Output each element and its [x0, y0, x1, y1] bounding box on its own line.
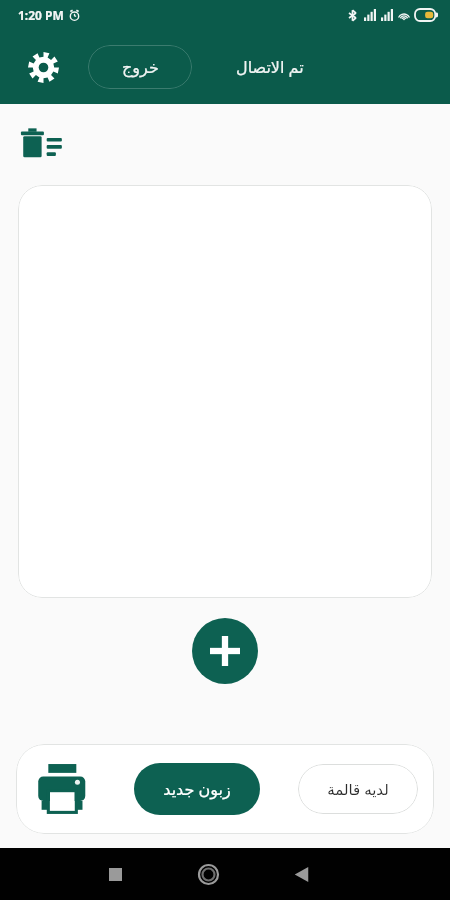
button[interactable]: خروج [88, 45, 192, 89]
staticText: خروج [122, 58, 159, 77]
staticText: 1:20 PM [18, 7, 64, 23]
button[interactable]: Print [32, 757, 96, 821]
button[interactable]: Home [187, 853, 229, 895]
button[interactable]: Recents [94, 853, 136, 895]
button[interactable]: زبون جديد [134, 763, 260, 815]
button[interactable]: Add [192, 618, 258, 684]
button[interactable]: Delete list [20, 124, 66, 164]
staticText: زبون جديد [163, 778, 231, 800]
button[interactable]: Settings [22, 46, 64, 88]
button[interactable]: لديه قالمة [298, 764, 418, 814]
staticText: لديه قالمة [327, 779, 389, 799]
button[interactable]: Back [280, 853, 322, 895]
staticText: تم الاتصال [236, 56, 304, 78]
